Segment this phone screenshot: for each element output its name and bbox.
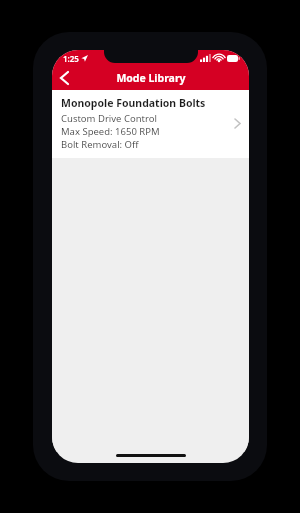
staticText: Custom Drive Control (61, 112, 157, 125)
staticText: Bolt Removal: Off (61, 138, 139, 151)
staticText: 1:25 (63, 53, 79, 64)
staticText: Mode Library (116, 71, 186, 85)
staticText: Max Speed: 1650 RPM (61, 125, 160, 138)
button[interactable]: Monopole Foundation Bolts (52, 90, 249, 158)
button[interactable]: Back (52, 66, 76, 90)
staticText: Monopole Foundation Bolts (61, 96, 206, 110)
